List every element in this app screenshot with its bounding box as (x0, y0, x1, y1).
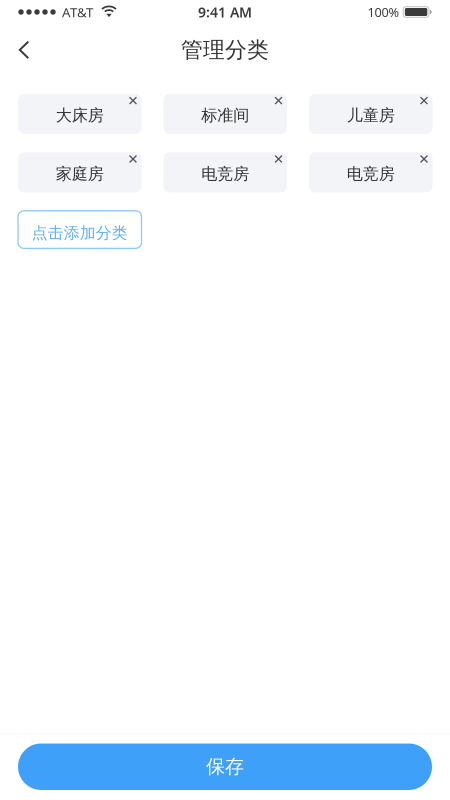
staticText: 家庭房 (56, 164, 104, 184)
staticText: 标准间 (201, 105, 249, 126)
button[interactable]: 点击添加分类 (18, 211, 141, 248)
button[interactable]: 电竞房 (309, 152, 432, 192)
staticText: 100% (367, 3, 399, 21)
button[interactable]: 电竞房 (163, 152, 287, 192)
button[interactable]: 保存 (18, 743, 432, 790)
button[interactable]: 标准间 (163, 94, 287, 134)
button[interactable]: 大床房 (18, 94, 141, 134)
staticText: 电竞房 (201, 164, 249, 184)
staticText: 儿童房 (347, 105, 395, 126)
button[interactable]: 家庭房 (18, 152, 141, 192)
staticText: 大床房 (56, 105, 104, 126)
staticText: AT&T (62, 3, 93, 21)
staticText: 管理分类 (181, 36, 269, 64)
staticText: 保存 (206, 755, 244, 779)
staticText: 电竞房 (347, 164, 395, 184)
staticText: 点击添加分类 (32, 223, 128, 243)
staticText: 9:41 AM (198, 2, 252, 22)
button[interactable]: 儿童房 (309, 94, 432, 134)
button[interactable]: Back (4, 26, 44, 74)
